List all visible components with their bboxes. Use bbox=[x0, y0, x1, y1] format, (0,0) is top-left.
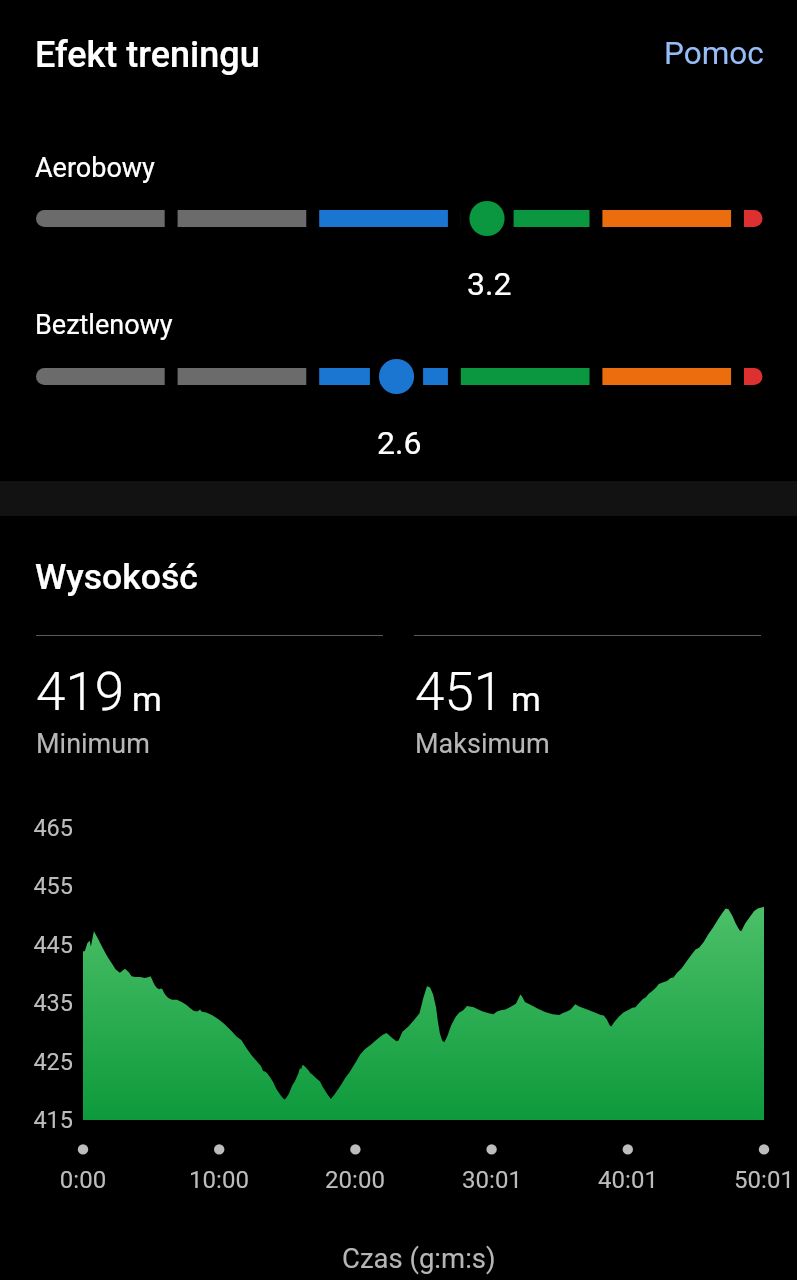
staticText: 415 bbox=[22, 1106, 73, 1134]
staticText: Minimum bbox=[36, 728, 150, 760]
staticText: Wysokość bbox=[35, 556, 198, 598]
staticText: 419 bbox=[36, 661, 125, 723]
staticText: Aerobowy bbox=[35, 152, 155, 184]
staticText: Czas (g:m:s) bbox=[342, 1242, 496, 1274]
button[interactable]: Efekt treningu bbox=[20, 18, 280, 82]
staticText: 30:01 bbox=[432, 1166, 552, 1194]
staticText: 50:01 bbox=[704, 1166, 797, 1194]
staticText: 40:01 bbox=[568, 1166, 688, 1194]
staticText: m bbox=[511, 679, 541, 719]
staticText: 3.2 bbox=[467, 265, 512, 303]
staticText: m bbox=[132, 679, 162, 719]
button[interactable]: 451 bbox=[409, 649, 762, 757]
staticText: 425 bbox=[22, 1048, 73, 1076]
staticText: Maksimum bbox=[415, 728, 550, 760]
button[interactable]: Pomoc bbox=[642, 18, 784, 82]
button[interactable]: Aerobowy bbox=[0, 110, 797, 481]
staticText: 20:00 bbox=[295, 1166, 415, 1194]
staticText: Pomoc bbox=[664, 35, 764, 72]
staticText: 451 bbox=[415, 661, 504, 723]
staticText: 445 bbox=[22, 931, 73, 959]
button[interactable]: 419 bbox=[30, 649, 383, 757]
staticText: 435 bbox=[22, 989, 73, 1017]
staticText: Beztlenowy bbox=[35, 309, 173, 341]
staticText: 10:00 bbox=[159, 1166, 279, 1194]
staticText: Efekt treningu bbox=[35, 34, 260, 76]
staticText: 0:00 bbox=[23, 1166, 143, 1194]
staticText: 465 bbox=[22, 814, 73, 842]
other: Elevation profile chart bbox=[0, 0, 797, 1280]
staticText: 455 bbox=[22, 872, 73, 900]
staticText: 2.6 bbox=[377, 424, 422, 462]
